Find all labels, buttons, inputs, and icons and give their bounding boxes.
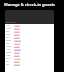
- staticText: Ava Bennett: [6, 24, 13, 27]
- staticText: Noah Carter: [6, 27, 13, 30]
- staticText: Lucas Irving: [6, 45, 13, 48]
- button[interactable]: Owen Keller: [6, 51, 54, 54]
- staticText: Invited: [14, 52, 20, 54]
- staticText: Nora Jensen: [6, 48, 13, 51]
- button[interactable]: Iris Novak: [6, 60, 54, 63]
- staticText: Jack Morgan: [6, 57, 13, 60]
- staticText: Checked: [14, 40, 21, 42]
- staticText: Manage & check-in guests: [4, 2, 56, 7]
- staticText: Waiting: [14, 43, 21, 45]
- staticText: Ella Harper: [6, 42, 13, 45]
- staticText: Invited: [14, 31, 20, 33]
- button[interactable]: Zoe Fletcher: [6, 36, 54, 39]
- staticText: Invited: [14, 61, 20, 63]
- staticText: Invited: [14, 64, 20, 66]
- staticText: Invited: [14, 34, 20, 36]
- button[interactable]: Ethan Grant: [6, 39, 54, 42]
- button[interactable]: Nora Jensen: [6, 48, 54, 51]
- button[interactable]: Ella Harper: [6, 42, 54, 45]
- staticText: Liam Everett: [6, 33, 13, 36]
- staticText: Iris Novak: [6, 60, 13, 63]
- button[interactable]: Mia Donovan: [6, 30, 54, 33]
- staticText: Checked: [14, 49, 21, 51]
- staticText: Guest list: [6, 21, 16, 24]
- staticText: Owen Keller: [6, 51, 13, 54]
- button[interactable]: Jack Morgan: [6, 57, 54, 60]
- staticText: Ruby Lawson: [6, 54, 13, 57]
- button[interactable]: Ava Bennett: [6, 24, 54, 27]
- staticText: Invited: [14, 37, 20, 39]
- staticText: Mia Donovan: [6, 30, 13, 33]
- staticText: Waiting: [14, 58, 21, 60]
- button[interactable]: Leo Parker: [6, 63, 54, 66]
- button[interactable]: Lucas Irving: [6, 45, 54, 48]
- staticText: Invited: [14, 55, 20, 57]
- staticText: Invited: [14, 25, 20, 27]
- staticText: Zoe Fletcher: [6, 36, 13, 39]
- staticText: Invited: [14, 28, 20, 30]
- button[interactable]: Noah Carter: [6, 27, 54, 30]
- staticText: Invited: [14, 46, 20, 48]
- staticText: Ethan Grant: [6, 39, 13, 42]
- staticText: Leo Parker: [6, 63, 13, 66]
- button[interactable]: Ruby Lawson: [6, 54, 54, 57]
- button[interactable]: Liam Everett: [6, 33, 54, 36]
